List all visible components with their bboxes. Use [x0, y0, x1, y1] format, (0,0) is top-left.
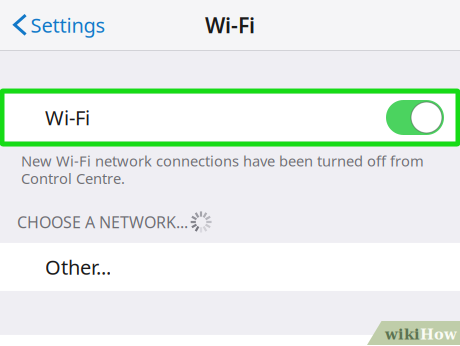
staticText: Other... [45, 254, 111, 280]
button[interactable]: Other... [0, 243, 460, 291]
staticText: Settings [30, 12, 105, 38]
staticText: Control Centre. [21, 168, 125, 188]
staticText: Wi-Fi [205, 11, 255, 39]
staticText: New Wi-Fi network connections have been … [21, 151, 424, 170]
staticText: wiki [385, 326, 420, 343]
staticText: How [420, 326, 457, 343]
staticText: CHOOSE A NETWORK... [17, 211, 188, 232]
button[interactable]: Wi-Fi [0, 94, 460, 141]
staticText: Wi-Fi [45, 104, 90, 131]
button[interactable]: Settings [0, 0, 115, 50]
